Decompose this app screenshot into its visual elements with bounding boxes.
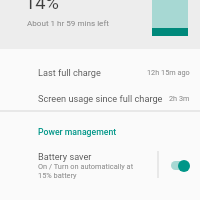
staticText: Last full charge (38, 67, 101, 78)
button[interactable]: Battery saver toggle (160, 145, 200, 187)
staticText: Battery saver (38, 151, 92, 162)
button[interactable]: Screen usage since full charge (0, 85, 200, 112)
button[interactable]: Last full charge (0, 59, 200, 86)
button[interactable]: Battery saver (0, 145, 200, 180)
staticText: About 1 hr 59 mins left (27, 18, 109, 27)
staticText: Power management (38, 127, 117, 137)
staticText: On / Turn on automatically at 15% batter… (38, 162, 134, 180)
staticText: 14% (25, 0, 59, 13)
staticText: 12h 15m ago (147, 68, 190, 77)
staticText: Screen usage since full charge (38, 93, 163, 104)
staticText: 2h 3m (169, 94, 190, 103)
